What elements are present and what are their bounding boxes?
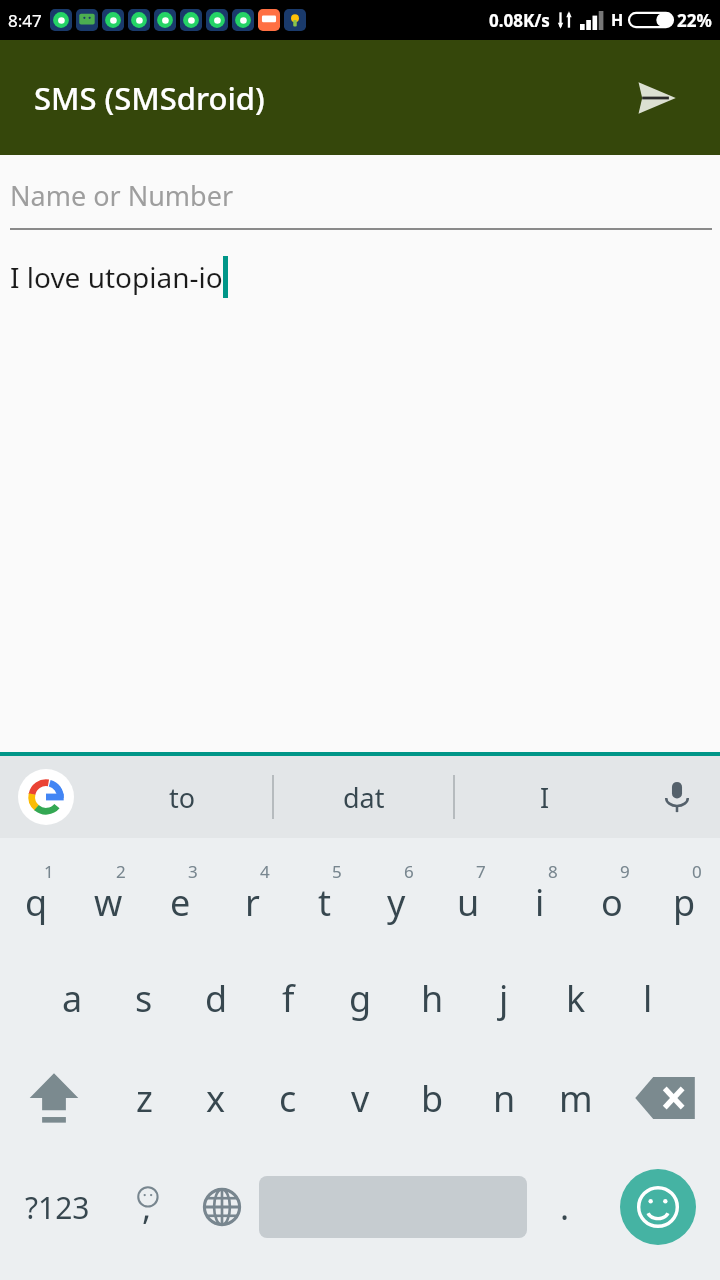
button[interactable]: v <box>324 1048 396 1148</box>
staticText: a <box>62 974 83 1023</box>
staticText: d <box>205 974 228 1023</box>
staticText: 22% <box>677 9 712 32</box>
button[interactable]: Google search <box>0 756 92 838</box>
button[interactable]: f <box>252 948 324 1048</box>
button[interactable]: 9 <box>576 844 648 948</box>
staticText: . <box>560 1184 570 1230</box>
staticText: 1 <box>44 860 54 883</box>
staticText: r <box>245 878 260 927</box>
button[interactable]: , <box>109 1148 184 1266</box>
staticText: SMS (SMSdroid) <box>34 77 626 119</box>
staticText: k <box>566 974 586 1023</box>
button[interactable]: s <box>108 948 180 1048</box>
staticText: 6 <box>404 860 414 883</box>
button[interactable]: Send message <box>626 68 686 128</box>
button[interactable]: ?123 <box>6 1148 109 1266</box>
staticText: f <box>282 974 295 1023</box>
staticText: t <box>318 878 331 927</box>
staticText: 7 <box>476 860 486 883</box>
button[interactable]: b <box>396 1048 468 1148</box>
button[interactable]: 2 <box>72 844 144 948</box>
staticText: m <box>559 1074 593 1123</box>
button[interactable]: l <box>612 948 684 1048</box>
button[interactable]: Voice input <box>634 756 720 838</box>
staticText: 3 <box>188 860 198 883</box>
staticText: 2 <box>116 860 126 883</box>
staticText: 8:47 <box>8 9 42 32</box>
button[interactable]: 0 <box>648 844 720 948</box>
staticText: , <box>142 1184 152 1230</box>
button[interactable]: I love utopian-io <box>0 230 720 298</box>
staticText: I <box>540 779 550 816</box>
button[interactable]: Backspace <box>612 1048 720 1148</box>
button[interactable]: 6 <box>360 844 432 948</box>
staticText: to <box>169 779 196 816</box>
staticText: j <box>499 974 509 1023</box>
staticText: I love utopian-io <box>10 258 223 296</box>
button[interactable]: m <box>540 1048 612 1148</box>
button[interactable]: 7 <box>432 844 504 948</box>
button[interactable]: Name or Number <box>0 155 720 230</box>
staticText: b <box>421 1074 444 1123</box>
staticText: s <box>135 974 153 1023</box>
staticText: i <box>535 878 545 927</box>
staticText: c <box>279 1074 297 1123</box>
staticText: 4 <box>260 860 270 883</box>
staticText: H <box>611 9 624 31</box>
staticText: q <box>25 878 48 927</box>
staticText: z <box>136 1074 153 1123</box>
staticText: e <box>170 878 191 927</box>
staticText: l <box>643 974 653 1023</box>
staticText: u <box>457 878 480 927</box>
button[interactable]: dat <box>274 756 453 838</box>
staticText: v <box>351 1074 370 1123</box>
button[interactable]: Change language <box>184 1148 259 1266</box>
button[interactable]: z <box>108 1048 180 1148</box>
staticText: Name or Number <box>10 177 234 214</box>
button[interactable]: Shift <box>0 1048 108 1148</box>
button[interactable]: c <box>252 1048 324 1148</box>
button[interactable]: 4 <box>216 844 288 948</box>
staticText: p <box>673 878 696 927</box>
button[interactable]: Emoji <box>602 1148 714 1266</box>
button[interactable]: n <box>468 1048 540 1148</box>
staticText: y <box>387 878 406 927</box>
staticText: 5 <box>332 860 342 883</box>
staticText: o <box>601 878 623 927</box>
staticText: 9 <box>620 860 630 883</box>
staticText: 0.08K/s <box>489 9 550 32</box>
button[interactable]: to <box>92 756 272 838</box>
staticText: dat <box>343 779 385 816</box>
button[interactable]: x <box>180 1048 252 1148</box>
button[interactable]: I <box>455 756 634 838</box>
staticText: h <box>421 974 444 1023</box>
staticText: n <box>493 1074 516 1123</box>
button[interactable]: d <box>180 948 252 1048</box>
button[interactable]: 3 <box>144 844 216 948</box>
button[interactable]: . <box>527 1148 602 1266</box>
staticText: 8 <box>548 860 558 883</box>
button[interactable]: j <box>468 948 540 1048</box>
button[interactable]: k <box>540 948 612 1048</box>
staticText: w <box>94 878 123 927</box>
staticText: x <box>206 1074 226 1123</box>
button[interactable]: a <box>36 948 108 1048</box>
staticText: g <box>349 974 372 1023</box>
button[interactable]: h <box>396 948 468 1048</box>
button[interactable]: 5 <box>288 844 360 948</box>
staticText: ?123 <box>25 1187 90 1228</box>
button[interactable]: 8 <box>504 844 576 948</box>
button[interactable]: g <box>324 948 396 1048</box>
button[interactable]: 1 <box>0 844 72 948</box>
staticText: 0 <box>692 860 702 883</box>
